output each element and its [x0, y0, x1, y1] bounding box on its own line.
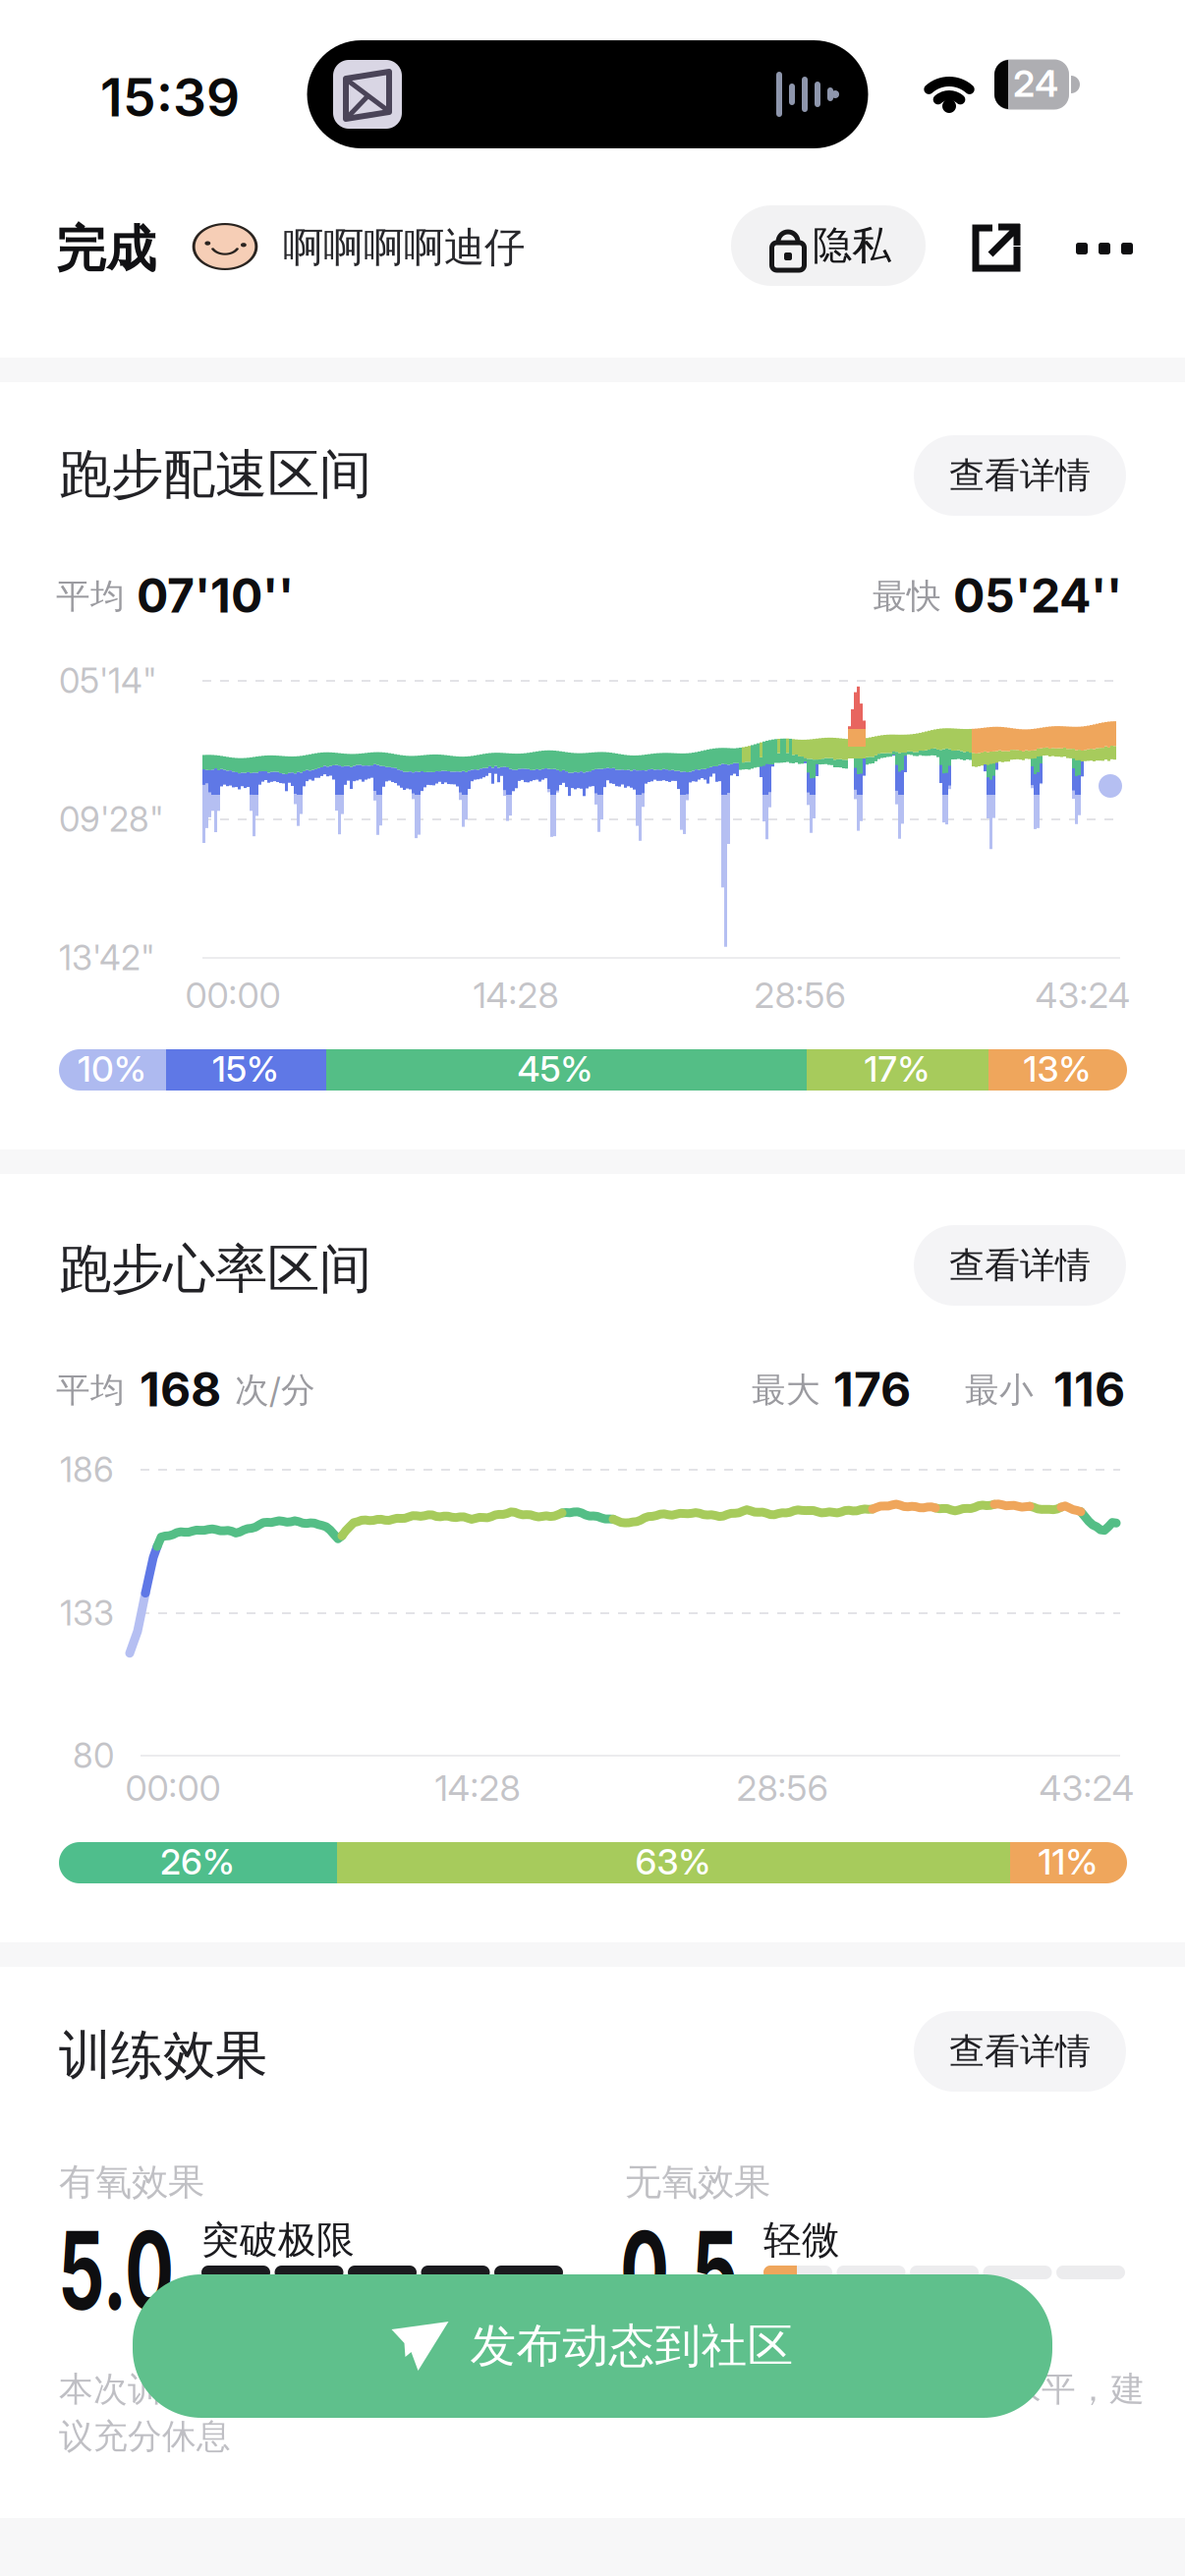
staticText: 05'24'' [953, 568, 1122, 623]
staticText: 05'14" [59, 661, 157, 701]
staticText: 本次训练强度很大， 身体的整体负荷已经明显超出日常 跑步的水平，建 [59, 2368, 1145, 2410]
staticText: 14:28 [473, 974, 559, 1016]
staticText: 45% [517, 1048, 593, 1090]
staticText: 15% [212, 1048, 279, 1090]
staticText: 11% [1038, 1841, 1098, 1883]
button[interactable]: 更多 [1065, 219, 1144, 278]
staticText: 平均 [56, 1369, 125, 1411]
staticText: 5.0 [58, 2207, 229, 2334]
staticText: 训练效果 [59, 2023, 267, 2087]
staticText: 跑步心率区间 [59, 1237, 371, 1301]
staticText: 00:00 [185, 974, 281, 1016]
staticText: 24 [1013, 62, 1058, 105]
staticText: 26% [160, 1841, 235, 1883]
staticText: 133 [60, 1593, 114, 1633]
staticText: 查看详情 [949, 454, 1091, 497]
staticText: 突破极限 [201, 2217, 355, 2263]
button[interactable]: 隐私 [731, 205, 926, 286]
staticText: 0.5 [620, 2207, 794, 2334]
staticText: 07'10'' [137, 568, 294, 623]
staticText: 完成 [56, 219, 156, 280]
staticText: 隐私 [813, 221, 891, 270]
button[interactable]: 查看详情 [914, 435, 1126, 516]
staticText: 09'28" [59, 799, 164, 840]
button[interactable]: 发布动态到社区 [133, 2274, 1052, 2418]
staticText: 轻微 [763, 2217, 840, 2263]
staticText: 43:24 [1039, 1767, 1134, 1809]
staticText: 13% [1023, 1048, 1091, 1090]
staticText: 176 [833, 1361, 911, 1417]
staticText: 168 [140, 1361, 221, 1417]
staticText: 啊啊啊啊迪仔 [283, 223, 525, 273]
staticText: 发布动态到社区 [470, 2318, 793, 2374]
staticText: 10% [78, 1048, 146, 1090]
staticText: 无氧效果 [625, 2160, 770, 2205]
staticText: 80 [73, 1736, 114, 1776]
staticText: 最快 [873, 575, 941, 617]
staticText: 议充分休息 [59, 2416, 231, 2457]
staticText: 平均 [56, 575, 125, 617]
staticText: 43:24 [1035, 974, 1130, 1016]
button[interactable]: 查看详情 [914, 1225, 1126, 1306]
staticText: 跑步配速区间 [59, 442, 371, 507]
staticText: 28:56 [754, 974, 846, 1016]
staticText: 次/分 [235, 1369, 315, 1411]
staticText: 00:00 [125, 1767, 221, 1809]
staticText: 17% [864, 1048, 930, 1090]
staticText: 13'42" [59, 938, 155, 978]
staticText: 28:56 [736, 1767, 828, 1809]
staticText: 14:28 [435, 1767, 520, 1809]
staticText: 116 [1053, 1361, 1125, 1417]
staticText: 186 [60, 1450, 114, 1490]
staticText: 有氧效果 [59, 2160, 204, 2205]
button[interactable]: 完成 [56, 210, 203, 289]
staticText: 63% [635, 1841, 711, 1883]
staticText: 查看详情 [949, 2030, 1091, 2073]
staticText: 15:39 [100, 66, 240, 128]
staticText: 最大 [752, 1369, 820, 1411]
staticText: 查看详情 [949, 1244, 1091, 1287]
button[interactable]: 分享 [969, 222, 1024, 277]
staticText: 最小 [965, 1369, 1034, 1411]
button[interactable]: 查看详情 [914, 2011, 1126, 2092]
